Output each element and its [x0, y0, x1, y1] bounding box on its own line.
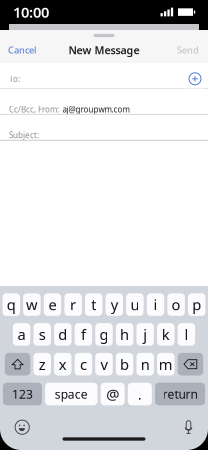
button[interactable]: Dictate [173, 414, 203, 440]
button[interactable]: o [167, 293, 185, 316]
staticText: f [81, 325, 86, 344]
staticText: j [143, 325, 147, 344]
staticText: q [7, 295, 16, 314]
button[interactable]: w [23, 293, 41, 316]
button[interactable]: return [155, 383, 205, 405]
staticText: g [99, 325, 108, 344]
button[interactable]: x [54, 353, 71, 375]
button[interactable]: h [116, 323, 133, 346]
staticText: . [138, 384, 142, 404]
staticText: n [141, 354, 150, 374]
staticText: return [162, 386, 197, 402]
staticText: m [159, 354, 173, 374]
button[interactable]: e [44, 293, 61, 316]
staticText: i [153, 295, 157, 314]
button[interactable]: . [128, 383, 152, 405]
button[interactable]: g [95, 323, 113, 346]
button[interactable]: Emoji [7, 414, 37, 440]
staticText: b [120, 354, 129, 374]
button[interactable]: u [126, 293, 144, 316]
button[interactable]: r [64, 293, 82, 316]
button[interactable]: n [136, 353, 154, 375]
staticText: k [162, 325, 170, 344]
button[interactable]: Cancel [0, 40, 50, 60]
button[interactable]: j [136, 323, 154, 346]
staticText: Subject: [9, 130, 39, 140]
button[interactable]: k [157, 323, 174, 346]
button[interactable]: t [85, 293, 102, 316]
staticText: d [58, 325, 67, 344]
button[interactable]: m [157, 353, 174, 375]
staticText: Cc/Bcc, From: [9, 104, 59, 115]
button[interactable]: y [106, 293, 123, 316]
staticText: New Message [68, 43, 139, 57]
button[interactable]: d [54, 323, 71, 346]
button[interactable]: @ [101, 383, 125, 405]
staticText: a [18, 325, 26, 344]
staticText: e [48, 295, 56, 314]
staticText: @ [106, 384, 119, 404]
staticText: u [130, 295, 139, 314]
staticText: c [80, 354, 87, 374]
staticText: h [120, 325, 129, 344]
button[interactable]: l [178, 323, 195, 346]
staticText: Cancel [8, 44, 36, 56]
button[interactable]: space [45, 383, 97, 405]
button[interactable]: i [147, 293, 164, 316]
staticText: w [26, 295, 38, 314]
staticText: l [184, 325, 188, 344]
staticText: Send [177, 44, 199, 56]
staticText: 123 [12, 386, 33, 402]
staticText: r [70, 295, 76, 314]
staticText: t [91, 295, 96, 314]
button[interactable]: c [75, 353, 92, 375]
staticText: o [172, 295, 181, 314]
staticText: aj@groupwm.com [62, 104, 129, 115]
button[interactable]: Add contact [185, 69, 205, 89]
button[interactable]: p [188, 293, 205, 316]
button[interactable]: s [33, 323, 51, 346]
staticText: 10:00 [13, 2, 49, 22]
staticText: p [192, 295, 201, 314]
button[interactable]: Shift [5, 353, 30, 375]
button[interactable]: v [95, 353, 113, 375]
button[interactable]: f [75, 323, 92, 346]
staticText: space [55, 386, 88, 402]
staticText: To: [9, 73, 20, 84]
staticText: v [100, 354, 107, 374]
staticText: z [39, 354, 46, 374]
staticText: x [59, 354, 67, 374]
button[interactable]: a [13, 323, 30, 346]
button[interactable]: Send [162, 40, 208, 60]
button[interactable]: b [116, 353, 133, 375]
button[interactable]: z [33, 353, 51, 375]
staticText: y [111, 295, 118, 314]
button[interactable]: Delete [178, 353, 203, 375]
button[interactable]: 123 [3, 383, 42, 405]
button[interactable]: q [3, 293, 20, 316]
staticText: s [39, 325, 46, 344]
